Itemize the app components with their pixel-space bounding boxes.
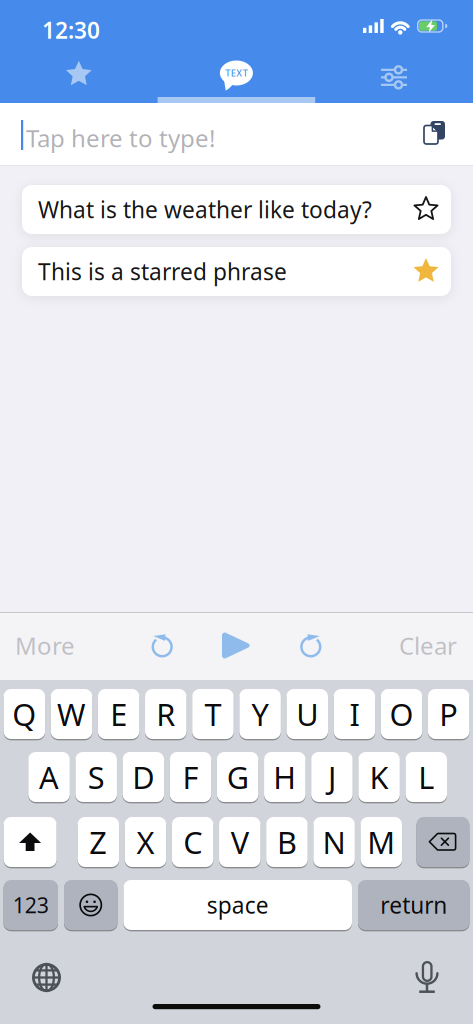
staticText: What is the weather like today? — [38, 194, 372, 224]
staticText: return — [380, 890, 447, 920]
button[interactable]: Clear — [383, 612, 473, 679]
button[interactable] — [0, 44, 158, 99]
button[interactable] — [413, 259, 439, 284]
staticText: J — [328, 757, 336, 797]
staticText: L — [418, 757, 434, 797]
staticText: Tap here to type! — [26, 122, 215, 154]
button[interactable] — [414, 961, 439, 993]
staticText: H — [273, 757, 296, 797]
button[interactable]: R — [145, 689, 186, 740]
staticText: N — [323, 822, 346, 862]
button[interactable]: 123 — [3, 880, 58, 931]
button[interactable] — [281, 612, 341, 679]
staticText: More — [15, 630, 75, 661]
button[interactable]: B — [266, 817, 308, 868]
button[interactable]: E — [98, 689, 139, 740]
button[interactable] — [424, 121, 445, 144]
button[interactable]: V — [219, 817, 260, 868]
button[interactable]: return — [358, 880, 469, 931]
button[interactable] — [32, 963, 61, 992]
button[interactable]: O — [381, 689, 422, 740]
button[interactable]: H — [264, 752, 306, 803]
button[interactable]: K — [358, 752, 400, 803]
staticText: V — [231, 822, 249, 862]
button[interactable]: U — [286, 689, 328, 740]
staticText: C — [183, 822, 202, 862]
button[interactable] — [201, 612, 271, 679]
button[interactable]: F — [170, 752, 211, 803]
button[interactable]: S — [75, 752, 117, 803]
staticText: T — [204, 694, 221, 734]
staticText: M — [367, 822, 395, 862]
staticText: D — [132, 757, 154, 797]
button[interactable]: X — [125, 817, 166, 868]
button[interactable] — [4, 817, 57, 868]
button[interactable]: A — [28, 752, 70, 803]
button[interactable]: D — [123, 752, 164, 803]
staticText: K — [370, 757, 389, 797]
staticText: Q — [12, 694, 36, 734]
button[interactable]: I — [334, 689, 375, 740]
staticText: G — [227, 757, 249, 797]
button[interactable]: P — [428, 689, 469, 740]
button[interactable]: space — [123, 880, 352, 931]
button[interactable]: G — [217, 752, 258, 803]
staticText: O — [390, 694, 414, 734]
staticText: A — [39, 757, 59, 797]
button[interactable]: Y — [239, 689, 281, 740]
button[interactable]: L — [405, 752, 447, 803]
staticText: U — [296, 694, 318, 734]
staticText: X — [136, 822, 154, 862]
button[interactable]: T — [192, 689, 234, 740]
staticText: R — [156, 694, 175, 734]
staticText: Y — [252, 694, 269, 734]
button[interactable]: More — [0, 612, 90, 679]
button[interactable] — [315, 44, 473, 99]
staticText: S — [88, 757, 105, 797]
button[interactable]: Q — [4, 689, 45, 740]
staticText: 123 — [13, 891, 49, 919]
staticText: I — [349, 694, 359, 734]
staticText: space — [207, 890, 269, 920]
button[interactable]: C — [172, 817, 213, 868]
button[interactable]: N — [313, 817, 355, 868]
staticText: Clear — [399, 630, 457, 661]
button[interactable] — [413, 197, 439, 222]
button[interactable]: M — [360, 817, 402, 868]
staticText: 12:30 — [42, 15, 100, 45]
button[interactable]: TEXT — [158, 44, 315, 99]
staticText: TEXT — [225, 67, 248, 79]
button[interactable]: W — [51, 689, 92, 740]
button[interactable] — [416, 817, 469, 868]
button[interactable]: Z — [78, 817, 119, 868]
staticText: B — [277, 822, 297, 862]
button[interactable]: J — [311, 752, 353, 803]
button[interactable] — [132, 612, 192, 679]
staticText: This is a starred phrase — [38, 256, 287, 286]
button[interactable]: This is a starred phrase — [22, 247, 451, 296]
button[interactable]: Tap here to type! — [0, 103, 473, 166]
staticText: F — [182, 757, 198, 797]
staticText: Z — [89, 822, 107, 862]
button[interactable] — [64, 880, 117, 931]
staticText: E — [110, 694, 127, 734]
button[interactable]: What is the weather like today? — [22, 185, 451, 234]
staticText: W — [57, 694, 86, 734]
staticText: P — [439, 694, 458, 734]
